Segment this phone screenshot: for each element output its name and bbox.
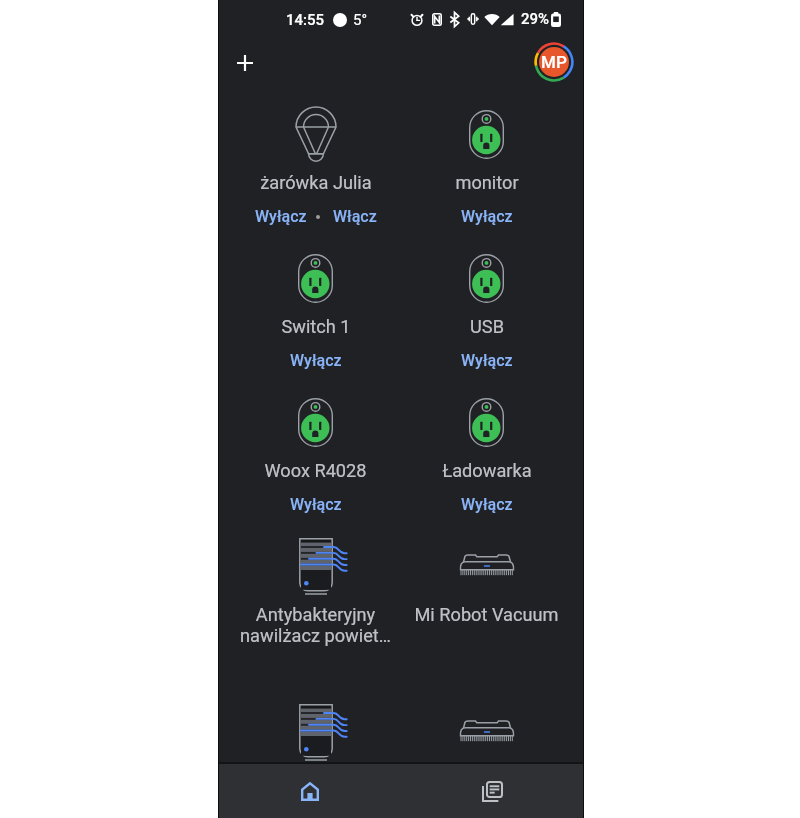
staticText: Wyłącz <box>461 495 513 514</box>
staticText: Wyłącz <box>461 207 513 226</box>
button[interactable] <box>401 686 572 818</box>
staticText: monitor <box>455 172 519 193</box>
button[interactable]: Mi Robot Vacuum <box>401 520 572 686</box>
button[interactable]: Wyłącz <box>461 207 513 226</box>
button[interactable]: Ładowarka <box>401 376 572 520</box>
staticText: MP <box>541 52 567 72</box>
staticText: Wyłącz <box>290 351 342 370</box>
staticText: 5° <box>353 11 368 29</box>
staticText: Wyłącz <box>461 351 513 370</box>
staticText: Włącz <box>333 207 377 226</box>
staticText: Woox R4028 <box>264 460 367 481</box>
button[interactable]: Switch 1 <box>230 232 401 376</box>
button[interactable]: Wyłącz <box>461 495 513 514</box>
button[interactable]: monitor <box>401 88 572 232</box>
staticText: USB <box>470 316 504 337</box>
button[interactable]: Antybakteryjny nawilżacz powiet… <box>230 520 401 686</box>
staticText: 29% <box>521 10 550 28</box>
staticText: Wyłącz <box>255 207 307 226</box>
staticText: Antybakteryjny nawilżacz powiet… <box>240 604 391 647</box>
button[interactable]: Wyłącz <box>290 495 342 514</box>
button[interactable]: Wyłącz <box>461 351 513 370</box>
staticText: żarówka Julia <box>260 172 372 193</box>
staticText: Mi Robot Vacuum <box>414 604 559 625</box>
button[interactable]: Account <box>532 40 576 84</box>
button[interactable] <box>230 686 401 818</box>
button[interactable]: Add device <box>223 41 267 85</box>
staticText: Wyłącz <box>290 495 342 514</box>
button[interactable]: USB <box>401 232 572 376</box>
staticText: 14:55 <box>286 11 325 29</box>
staticText: Switch 1 <box>281 316 351 337</box>
button[interactable]: Woox R4028 <box>230 376 401 520</box>
button[interactable]: Wyłącz <box>255 207 307 226</box>
button[interactable]: Home <box>218 764 401 818</box>
staticText: Ładowarka <box>442 460 532 481</box>
button[interactable]: Wyłącz <box>290 351 342 370</box>
button[interactable]: Feed <box>401 764 584 818</box>
button[interactable]: Włącz <box>333 207 377 226</box>
button[interactable]: żarówka Julia <box>230 88 401 232</box>
